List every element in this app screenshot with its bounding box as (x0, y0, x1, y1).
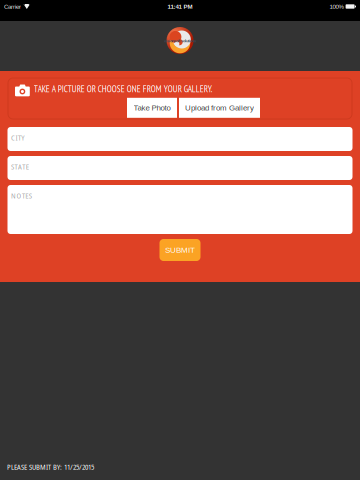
button[interactable]: SUBMIT (159, 239, 200, 261)
staticText: STATE (11, 161, 29, 172)
staticText: TAKE A PICTURE OR CHOOSE ONE FROM YOUR G… (34, 83, 213, 95)
staticText: NOTES (11, 190, 32, 201)
button[interactable]: Take Photo (127, 98, 177, 118)
staticText: SUBMIT (165, 245, 195, 254)
staticText: Take Photo (133, 103, 170, 112)
staticText: Carrier (4, 3, 21, 10)
staticText: 11:41 PM (167, 3, 192, 10)
button[interactable]: Upload from Gallery (179, 98, 260, 118)
staticText: 100% (330, 3, 344, 10)
staticText: CITY (11, 132, 24, 143)
staticText: Upload from Gallery (185, 103, 254, 112)
staticText: visionsoft solutions (164, 39, 196, 43)
staticText: PLEASE SUBMIT BY: 11/25/2015 (7, 462, 94, 472)
